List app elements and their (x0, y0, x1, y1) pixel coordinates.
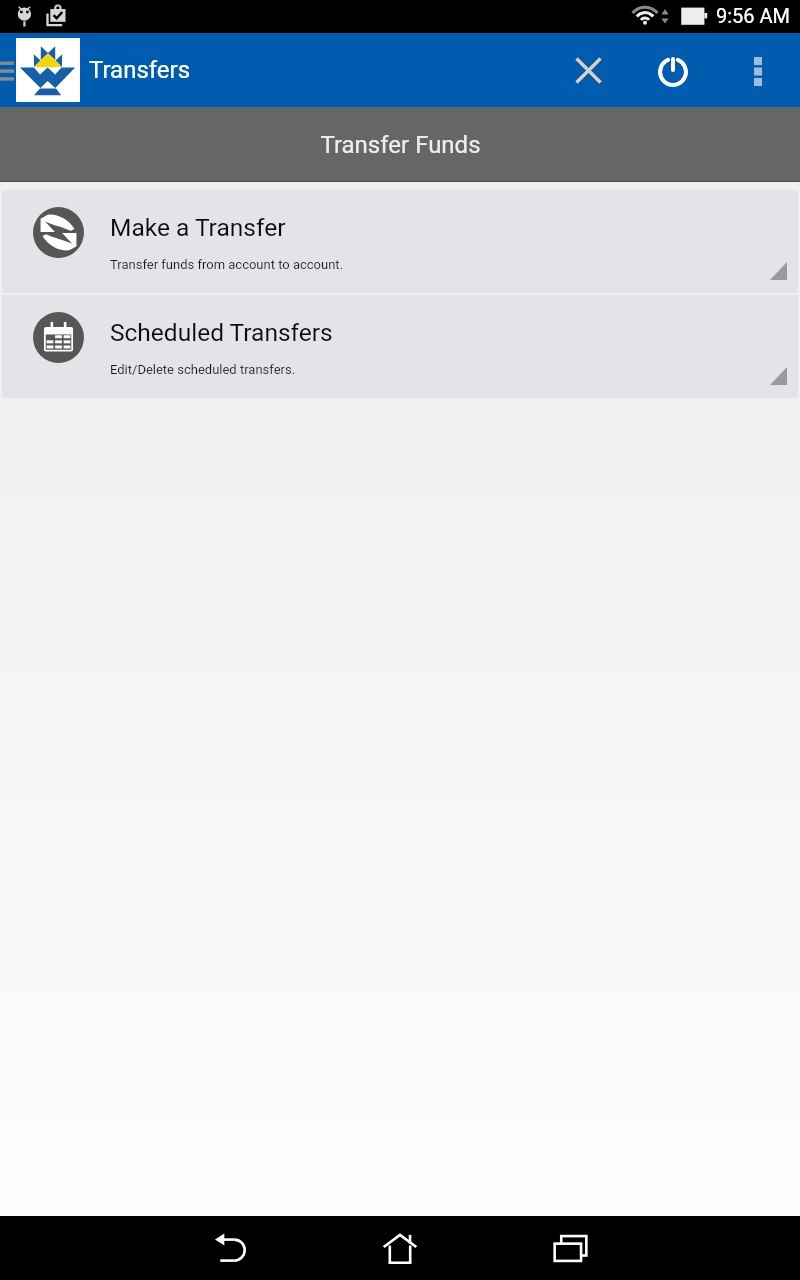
button[interactable]: Home logo (16, 38, 80, 102)
button[interactable]: Power off (644, 35, 701, 109)
button[interactable]: Scheduled Transfers (2, 295, 798, 398)
button[interactable]: Close (560, 33, 617, 107)
button[interactable]: Recent apps (525, 1216, 615, 1280)
staticText: Scheduled Transfers (110, 318, 333, 347)
button[interactable]: Menu (0, 33, 14, 107)
staticText: Transfer Funds (320, 131, 481, 159)
staticText: Edit/Delete scheduled transfers. (110, 362, 296, 377)
staticText: Transfer funds from account to account. (110, 257, 344, 272)
staticText: Make a Transfer (110, 213, 286, 242)
staticText: Transfers (89, 56, 191, 84)
button[interactable]: Back (185, 1216, 275, 1280)
staticText: 9:56 AM (716, 4, 791, 27)
button[interactable]: Home (355, 1216, 445, 1280)
button[interactable]: Make a Transfer (2, 190, 798, 293)
button[interactable]: More options (730, 33, 787, 107)
